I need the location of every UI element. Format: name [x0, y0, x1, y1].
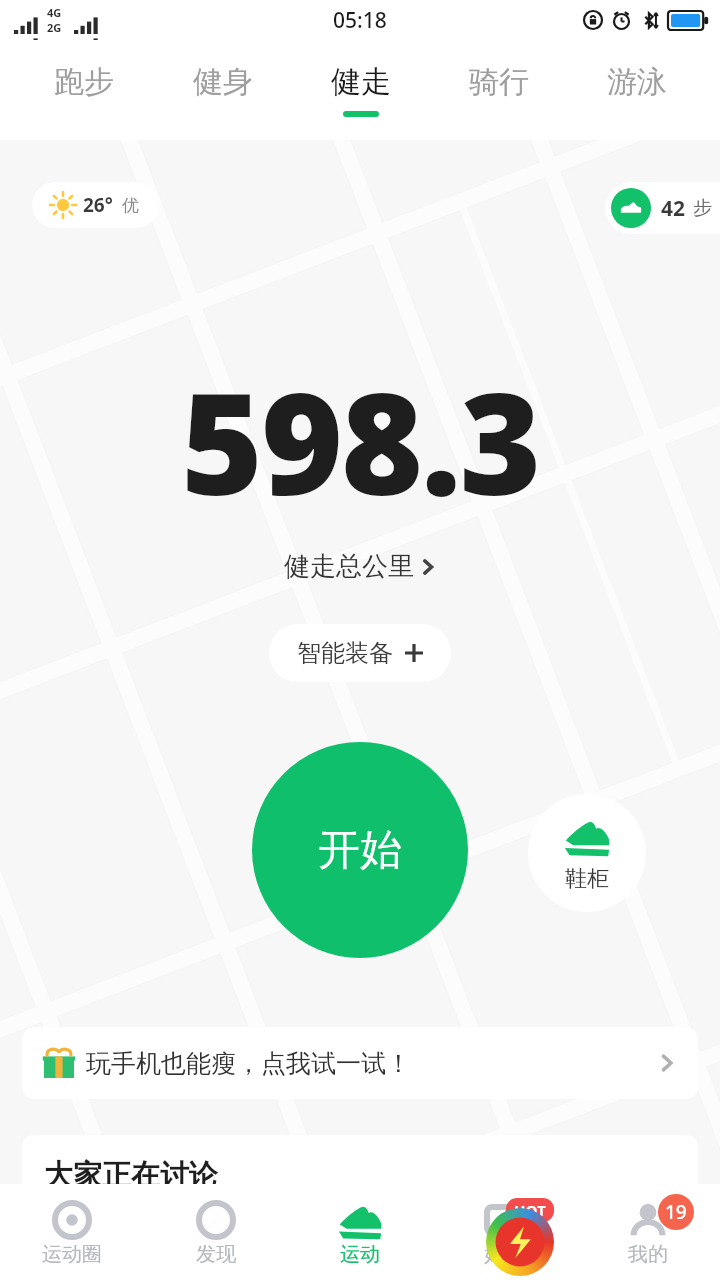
button[interactable]: 骑行 [430, 40, 568, 140]
button[interactable]: 玩手机也能瘦，点我试一试！ [22, 1027, 698, 1099]
staticText: 步 [693, 196, 712, 220]
staticText: 运动圈 [42, 1242, 102, 1267]
staticText: 玩手机也能瘦，点我试一试！ [86, 1048, 411, 1079]
button[interactable]: 我的 [576, 1184, 720, 1280]
button[interactable]: 健身 [153, 40, 292, 140]
staticText: 开始 [318, 824, 402, 877]
staticText: 我的 [628, 1242, 668, 1267]
staticText: 游泳 [607, 63, 667, 101]
staticText: 优 [122, 195, 139, 216]
staticText: 好货 [484, 1242, 524, 1267]
staticText: 4G [47, 5, 62, 20]
button[interactable]: 健走总公里 [276, 546, 444, 587]
staticText: 鞋柜 [565, 865, 609, 893]
staticText: 健走总公里 [284, 550, 414, 583]
staticText: 05:18 [333, 6, 387, 35]
staticText: 42 [661, 194, 686, 223]
staticText: 跑步 [54, 63, 114, 101]
button[interactable]: 运动圈 [0, 1184, 144, 1280]
staticText: HOT [514, 1200, 546, 1220]
button[interactable]: 运动 [288, 1184, 432, 1280]
staticText: 19 [665, 1199, 687, 1225]
button[interactable]: 42 [605, 182, 720, 234]
staticText: 大家正在讨论 [44, 1157, 218, 1194]
button[interactable]: 游泳 [568, 40, 706, 140]
staticText: 2G [47, 20, 62, 35]
staticText: 26° [83, 192, 113, 218]
staticText: 598.3 [181, 345, 540, 536]
button[interactable]: 跑步 [14, 40, 153, 140]
button[interactable]: 健走 [292, 40, 430, 140]
button[interactable]: 大家正在讨论 [22, 1135, 698, 1265]
staticText: 智能装备 [297, 638, 393, 668]
staticText: 运动 [340, 1242, 380, 1267]
button[interactable]: 智能装备 [269, 624, 451, 682]
button[interactable]: 好货 [432, 1184, 576, 1280]
button[interactable]: 26° [32, 182, 159, 228]
button[interactable]: 鞋柜 [528, 794, 646, 912]
staticText: 健走 [331, 63, 391, 101]
staticText: 骑行 [469, 63, 529, 101]
button[interactable]: 开始 [252, 742, 468, 958]
staticText: 发现 [196, 1242, 236, 1267]
staticText: 健身 [193, 63, 253, 101]
button[interactable]: 发现 [144, 1184, 288, 1280]
